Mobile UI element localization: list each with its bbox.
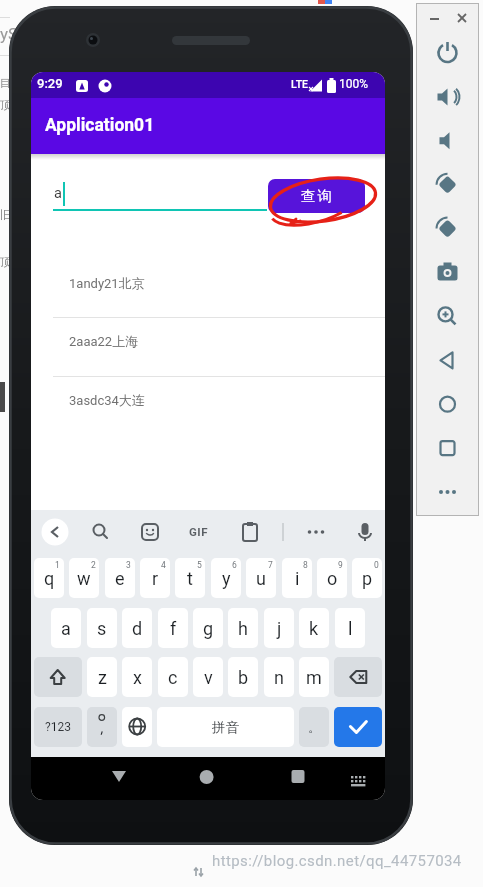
- button[interactable]: [104, 762, 134, 792]
- staticText: b: [238, 667, 249, 688]
- button[interactable]: [434, 404, 462, 432]
- button[interactable]: m: [299, 657, 329, 697]
- staticText: GIF: [189, 525, 208, 538]
- staticText: ?123: [45, 720, 71, 734]
- button[interactable]: x: [122, 657, 152, 697]
- staticText: a: [61, 618, 71, 639]
- button[interactable]: z: [87, 657, 117, 697]
- button[interactable]: b: [228, 657, 258, 697]
- button[interactable]: [236, 518, 264, 546]
- button[interactable]: u: [246, 558, 276, 598]
- staticText: 3asdc34大连: [69, 392, 145, 408]
- button[interactable]: 1andy21北京: [31, 261, 385, 305]
- button[interactable]: [434, 273, 462, 301]
- staticText: Application01: [45, 115, 155, 136]
- button[interactable]: 2aaa22上海: [31, 319, 385, 363]
- staticText: s: [97, 618, 107, 639]
- staticText: 目: [0, 76, 11, 90]
- button[interactable]: k: [299, 608, 329, 648]
- button[interactable]: n: [264, 657, 294, 697]
- button[interactable]: c: [158, 657, 188, 697]
- staticText: n: [274, 667, 284, 688]
- staticText: 1: [55, 560, 60, 570]
- staticText: g: [203, 618, 214, 639]
- staticText: m: [306, 667, 322, 688]
- staticText: v: [204, 667, 213, 688]
- button[interactable]: v: [193, 657, 223, 697]
- button[interactable]: [122, 707, 152, 747]
- staticText: 查询: [300, 187, 333, 205]
- button[interactable]: [434, 448, 462, 476]
- staticText: y: [222, 568, 231, 589]
- button[interactable]: [136, 518, 164, 546]
- staticText: 3: [126, 560, 131, 570]
- button[interactable]: 拼音: [157, 707, 294, 747]
- staticText: t: [187, 568, 193, 589]
- button[interactable]: t: [175, 558, 205, 598]
- button[interactable]: 3asdc34大连: [31, 378, 385, 422]
- button[interactable]: [345, 762, 375, 792]
- staticText: yS: [0, 24, 19, 44]
- button[interactable]: [34, 657, 82, 697]
- staticText: a: [54, 185, 62, 202]
- button[interactable]: g: [193, 608, 223, 648]
- staticText: 9:29: [37, 76, 63, 91]
- button[interactable]: [334, 657, 382, 697]
- staticText: u: [256, 568, 266, 589]
- button[interactable]: l: [335, 608, 365, 648]
- button[interactable]: h: [228, 608, 258, 648]
- button[interactable]: ?123: [34, 707, 82, 747]
- button[interactable]: q: [34, 558, 64, 598]
- button[interactable]: [334, 707, 382, 747]
- button[interactable]: [434, 185, 462, 213]
- staticText: d: [132, 618, 143, 639]
- staticText: 2aaa22上海: [69, 333, 139, 349]
- button[interactable]: 查询: [268, 179, 365, 213]
- staticText: j: [277, 618, 282, 639]
- staticText: 7: [268, 560, 273, 570]
- staticText: i: [295, 568, 300, 589]
- button[interactable]: [434, 53, 462, 81]
- staticText: x: [133, 667, 142, 688]
- button[interactable]: y: [211, 558, 241, 598]
- button[interactable]: w: [69, 558, 99, 598]
- staticText: https://blog.csdn.net/qq_44757034: [212, 852, 462, 870]
- button[interactable]: [434, 141, 462, 169]
- button[interactable]: a: [51, 608, 81, 648]
- button[interactable]: [434, 360, 462, 388]
- staticText: 2: [91, 560, 96, 570]
- staticText: p: [362, 568, 373, 589]
- button[interactable]: ,: [87, 707, 117, 747]
- button[interactable]: [434, 229, 462, 257]
- button[interactable]: [434, 316, 462, 344]
- button[interactable]: [187, 518, 215, 546]
- staticText: h: [238, 618, 248, 639]
- staticText: e: [115, 568, 125, 589]
- staticText: q: [44, 568, 55, 589]
- button[interactable]: [283, 762, 313, 792]
- button[interactable]: [192, 762, 222, 792]
- button[interactable]: d: [122, 608, 152, 648]
- button[interactable]: [86, 518, 114, 546]
- button[interactable]: j: [264, 608, 294, 648]
- button[interactable]: [434, 97, 462, 125]
- button[interactable]: [302, 518, 330, 546]
- staticText: o: [327, 568, 338, 589]
- staticText: 9: [338, 560, 343, 570]
- button[interactable]: e: [105, 558, 135, 598]
- button[interactable]: p: [352, 558, 382, 598]
- button[interactable]: f: [158, 608, 188, 648]
- staticText: z: [98, 667, 107, 688]
- button[interactable]: [351, 518, 379, 546]
- button[interactable]: s: [87, 608, 117, 648]
- button[interactable]: o: [317, 558, 347, 598]
- staticText: 顶: [0, 255, 11, 269]
- button[interactable]: 。: [299, 707, 329, 747]
- button[interactable]: [41, 518, 69, 546]
- staticText: 拼音: [212, 719, 239, 736]
- button[interactable]: r: [140, 558, 170, 598]
- staticText: 0: [374, 560, 379, 570]
- staticText: l: [348, 618, 353, 639]
- button[interactable]: [434, 492, 462, 520]
- button[interactable]: i: [282, 558, 312, 598]
